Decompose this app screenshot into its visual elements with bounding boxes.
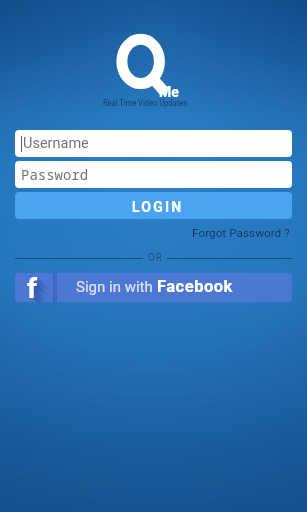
staticText: f: [32, 276, 43, 302]
staticText: Real Time Video Updates: [103, 98, 188, 109]
button[interactable]: Forgot Password ?: [192, 226, 290, 240]
staticText: f: [35, 279, 46, 302]
staticText: f: [36, 280, 47, 302]
staticText: f: [34, 278, 45, 302]
staticText: f: [38, 282, 49, 302]
staticText: f: [30, 274, 41, 302]
staticText: f: [31, 275, 42, 302]
staticText: f: [38, 281, 49, 302]
staticText: f: [33, 277, 44, 302]
staticText: f: [31, 275, 42, 302]
button[interactable]: Password: [15, 161, 292, 188]
staticText: f: [27, 273, 38, 301]
staticText: f: [28, 273, 39, 301]
staticText: Me: [159, 84, 179, 100]
button[interactable]: LOGIN: [15, 192, 292, 219]
staticText: f: [35, 279, 46, 302]
staticText: Username: [23, 135, 89, 152]
button[interactable]: Username: [15, 130, 292, 157]
button[interactable]: f: [15, 273, 292, 302]
staticText: f: [37, 281, 48, 302]
staticText: LOGIN: [132, 199, 184, 215]
staticText: Facebook: [157, 277, 233, 296]
staticText: OR: [148, 252, 163, 264]
staticText: f: [29, 273, 40, 302]
staticText: f: [28, 273, 39, 302]
staticText: f: [33, 277, 44, 302]
staticText: Sign in with: [76, 278, 157, 296]
staticText: Password: [21, 165, 89, 184]
